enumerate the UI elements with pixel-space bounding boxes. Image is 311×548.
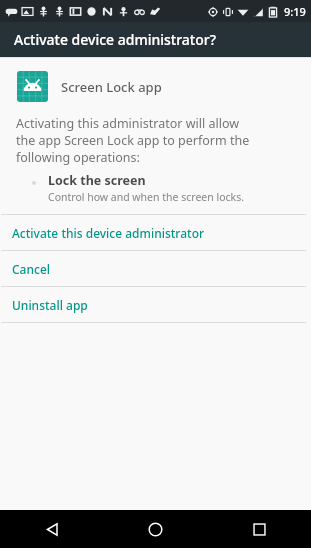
staticText: Uninstall app <box>12 297 88 313</box>
staticText: Control how and when the screen locks. <box>48 190 244 204</box>
staticText: Screen Lock app <box>61 78 162 96</box>
staticText: the app Screen Lock app to perform the <box>16 132 250 149</box>
staticText: Activating this administrator will allow <box>16 115 240 132</box>
button[interactable]: Cancel <box>0 251 311 286</box>
button[interactable]: Home <box>134 510 176 548</box>
button[interactable]: Recent apps <box>238 510 280 548</box>
staticText: Lock the screen <box>48 172 146 189</box>
staticText: 9:19 <box>284 4 306 19</box>
staticText: Activate this device administrator <box>12 225 205 241</box>
staticText: following operations: <box>16 149 140 166</box>
button[interactable]: Back <box>31 510 73 548</box>
staticText: Activate device administrator? <box>14 30 216 49</box>
button[interactable]: Uninstall app <box>0 287 311 322</box>
staticText: Cancel <box>12 261 51 277</box>
button[interactable]: Activate this device administrator <box>0 215 311 250</box>
